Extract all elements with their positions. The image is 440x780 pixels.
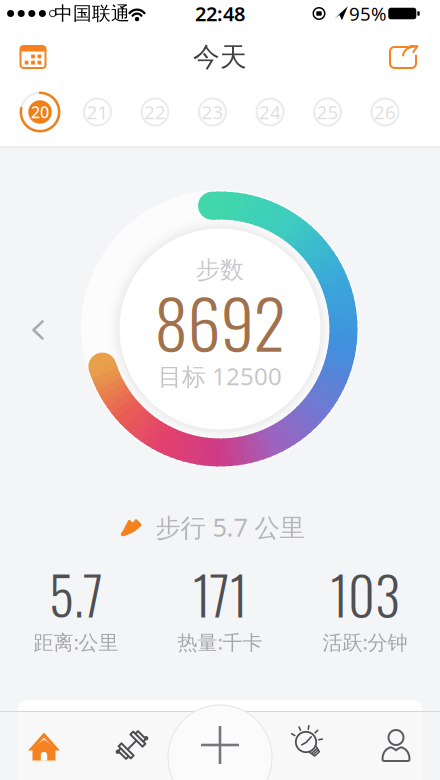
button[interactable]: [27, 730, 61, 761]
staticText: 103: [330, 555, 400, 633]
staticText: 活跃:分钟: [322, 629, 407, 655]
staticText: 22: [144, 100, 166, 124]
staticText: 23: [201, 100, 223, 124]
staticText: 26: [374, 100, 396, 124]
button[interactable]: 22: [138, 95, 172, 129]
staticText: 中国联通: [54, 2, 130, 25]
button[interactable]: [168, 705, 272, 780]
staticText: 距离:公里: [33, 629, 118, 655]
button[interactable]: 24: [253, 95, 287, 129]
staticText: 21: [86, 100, 108, 124]
staticText: 95%: [349, 1, 387, 26]
staticText: 24: [259, 100, 281, 124]
staticText: 5.7: [49, 555, 103, 633]
staticText: 22:48: [195, 0, 245, 27]
button[interactable]: 26: [368, 95, 402, 129]
staticText: 步行 5.7 公里: [155, 510, 304, 544]
button[interactable]: 21: [80, 95, 114, 129]
button[interactable]: 25: [310, 95, 344, 129]
staticText: 25: [316, 100, 338, 124]
staticText: 目标 12500: [158, 360, 282, 392]
button[interactable]: [19, 44, 47, 70]
button[interactable]: 23: [195, 95, 229, 129]
button[interactable]: [116, 729, 148, 761]
staticText: 8692: [154, 272, 285, 371]
button[interactable]: [292, 729, 324, 761]
button[interactable]: [381, 729, 411, 762]
staticText: 今天: [193, 41, 247, 73]
staticText: 步数: [196, 255, 244, 285]
button[interactable]: [32, 320, 44, 340]
staticText: 171: [192, 555, 247, 633]
staticText: 20: [31, 101, 49, 123]
button[interactable]: 20: [19, 91, 61, 133]
staticText: 热量:千卡: [177, 629, 262, 655]
button[interactable]: [390, 42, 420, 72]
